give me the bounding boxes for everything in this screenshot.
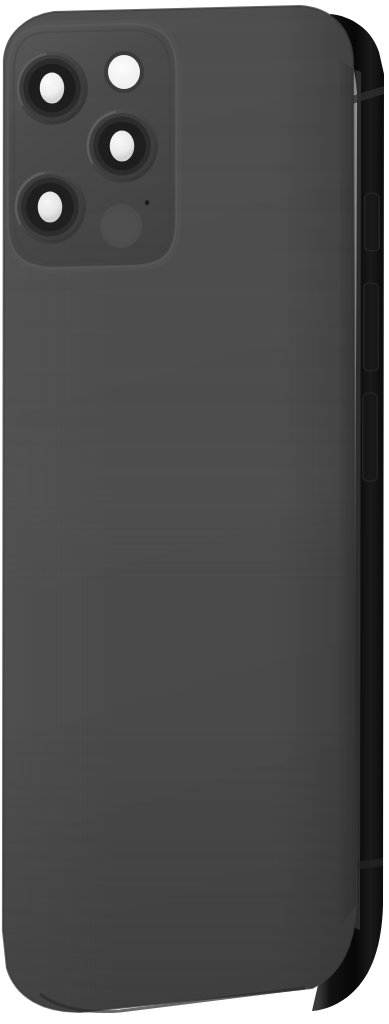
button[interactable]: Phone back view, graphite	[0, 0, 389, 1024]
